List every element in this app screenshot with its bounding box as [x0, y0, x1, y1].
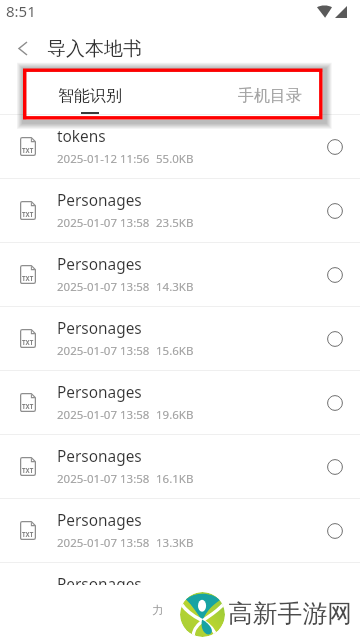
staticText: 智能识别	[58, 86, 122, 106]
staticText: 2025-01-07 13:58	[57, 535, 150, 551]
staticText: tokens	[57, 126, 106, 147]
staticText: Personages	[57, 574, 142, 585]
staticText: 23.5KB	[156, 215, 194, 231]
staticText: Personages	[57, 510, 142, 531]
button[interactable]: TXT	[0, 371, 360, 435]
staticText: 2025-01-07 13:58	[57, 215, 150, 231]
staticText: 手机目录	[238, 86, 302, 106]
staticText: TXT	[22, 466, 34, 474]
staticText: 13.3KB	[156, 535, 194, 551]
staticText: 19.6KB	[156, 407, 194, 423]
button[interactable]: TXT	[0, 243, 360, 307]
button[interactable]: Back	[0, 26, 44, 70]
staticText: Personages	[57, 382, 142, 403]
staticText: 高新手游网	[228, 598, 352, 629]
staticText: Personages	[57, 318, 142, 339]
staticText: Personages	[57, 446, 142, 467]
staticText: Personages	[57, 190, 142, 211]
button[interactable]: TXT	[0, 563, 360, 585]
button[interactable]: TXT	[0, 179, 360, 243]
staticText: TXT	[22, 274, 34, 282]
staticText: 14.3KB	[156, 279, 194, 295]
staticText: 55.0KB	[156, 151, 194, 167]
button[interactable]: 手机目录	[180, 70, 360, 115]
staticText: 力	[152, 603, 163, 617]
button[interactable]: TXT	[0, 435, 360, 499]
button[interactable]: TXT	[0, 499, 360, 563]
staticText: TXT	[22, 338, 34, 346]
staticText: 2025-01-07 13:58	[57, 279, 150, 295]
button[interactable]: 智能识别	[0, 70, 180, 115]
button[interactable]: TXT	[0, 115, 360, 179]
staticText: 2025-01-07 13:58	[57, 343, 150, 359]
staticText: 2025-01-07 13:58	[57, 471, 150, 487]
staticText: 2025-01-07 13:58	[57, 407, 150, 423]
staticText: 15.6KB	[156, 343, 194, 359]
staticText: TXT	[22, 146, 34, 154]
staticText: 8:51	[6, 1, 36, 21]
staticText: 16.1KB	[156, 471, 194, 487]
staticText: 2025-01-12 11:56	[57, 151, 150, 167]
staticText: TXT	[22, 530, 34, 538]
staticText: 导入本地书	[47, 37, 142, 61]
staticText: TXT	[22, 210, 34, 218]
staticText: Personages	[57, 254, 142, 275]
button[interactable]: TXT	[0, 307, 360, 371]
staticText: TXT	[22, 402, 34, 410]
